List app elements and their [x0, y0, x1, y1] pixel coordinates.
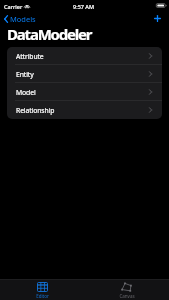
staticText: DataModeler	[7, 24, 92, 44]
staticText: Carrier	[4, 3, 23, 10]
button[interactable]: Canvas	[84, 280, 169, 299]
staticText: Editor	[36, 293, 49, 299]
button[interactable]: Attribute	[7, 47, 162, 65]
button[interactable]: Relationship	[7, 101, 162, 119]
staticText: Models	[10, 14, 36, 24]
staticText: Relationship	[16, 106, 55, 115]
button[interactable]: Add	[146, 11, 169, 25]
button[interactable]: Model	[7, 83, 162, 101]
button[interactable]: Models	[0, 12, 42, 26]
staticText: Attribute	[16, 52, 44, 61]
staticText: Canvas	[119, 293, 135, 299]
staticText: 9:57 AM	[73, 3, 95, 10]
button[interactable]: Entity	[7, 65, 162, 83]
staticText: Entity	[16, 70, 34, 79]
staticText: Model	[16, 88, 36, 97]
button[interactable]: Editor	[0, 280, 84, 299]
